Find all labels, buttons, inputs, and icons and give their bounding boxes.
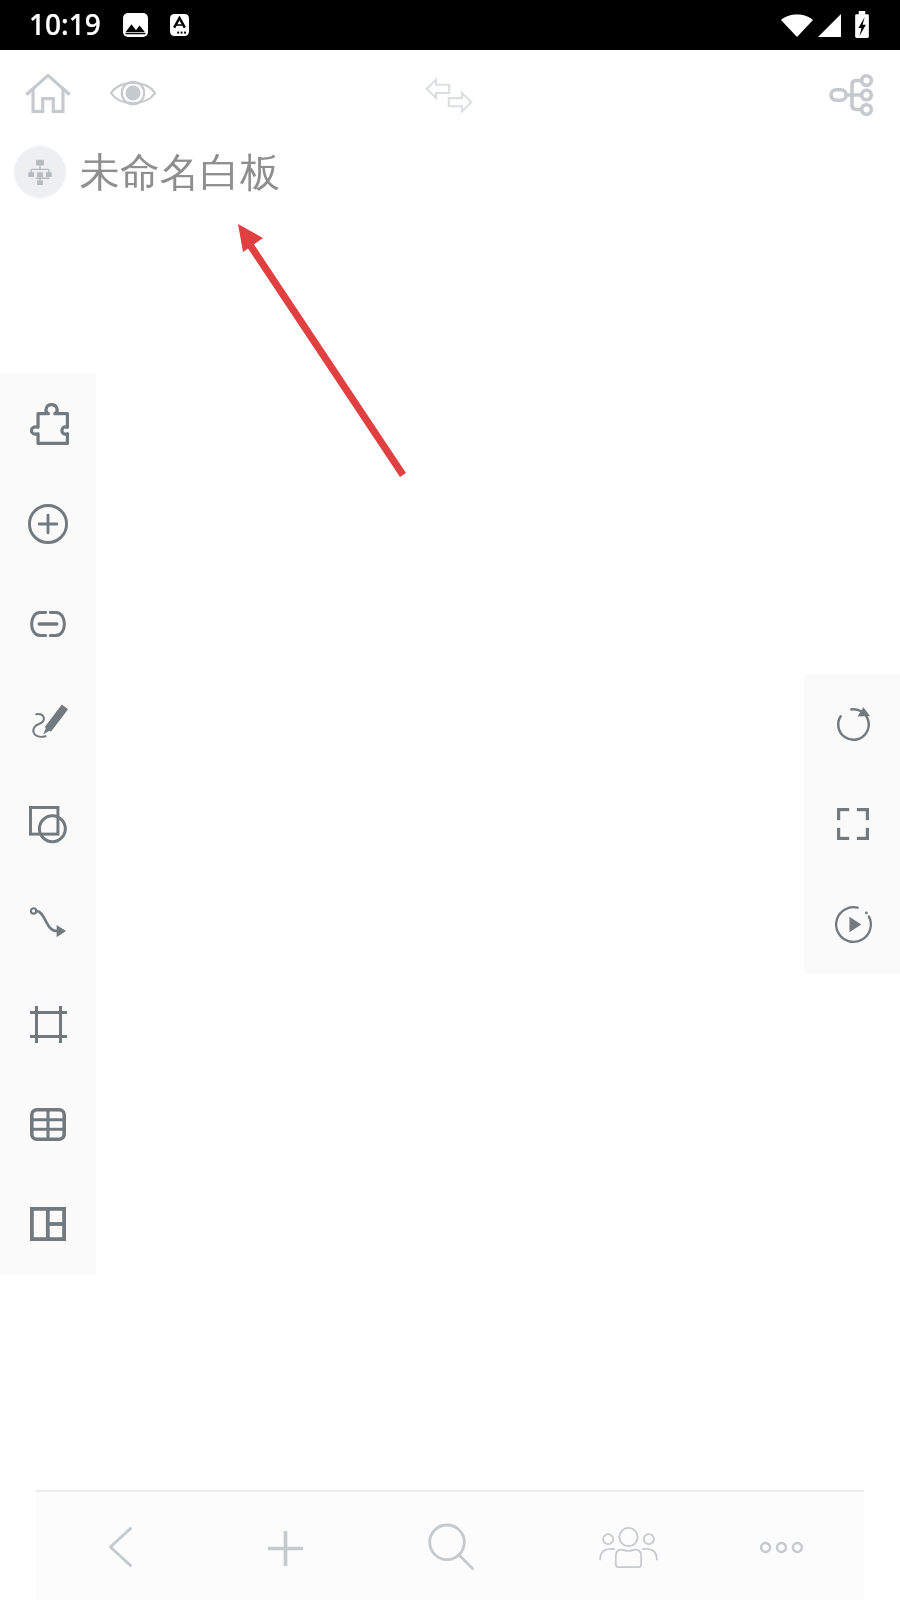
button[interactable]: Home bbox=[13, 58, 83, 128]
button[interactable]: Undo and redo bbox=[414, 60, 484, 130]
button[interactable]: Share bbox=[817, 60, 887, 130]
staticText: 未命名白板 bbox=[80, 147, 280, 197]
button[interactable]: Pen bbox=[0, 674, 96, 774]
button[interactable]: Plugins bbox=[0, 374, 96, 474]
button[interactable]: Frame bbox=[0, 974, 96, 1074]
button[interactable]: Connector bbox=[0, 874, 96, 974]
button[interactable]: More options bbox=[704, 1492, 864, 1600]
button[interactable]: Members bbox=[534, 1492, 704, 1600]
button[interactable]: Add bbox=[200, 1492, 367, 1600]
staticText: 10:19 bbox=[29, 5, 101, 43]
button[interactable]: Layout bbox=[0, 1174, 96, 1274]
button[interactable]: Reset view bbox=[804, 674, 900, 774]
button[interactable]: Back bbox=[36, 1492, 200, 1600]
button[interactable]: Search bbox=[367, 1492, 534, 1600]
button[interactable]: Insert bbox=[0, 474, 96, 574]
button[interactable]: Present bbox=[804, 874, 900, 974]
button[interactable]: Fit to screen bbox=[804, 774, 900, 874]
button[interactable]: Shapes bbox=[0, 774, 96, 874]
button[interactable]: Link bbox=[0, 574, 96, 674]
button[interactable]: Preview mode bbox=[98, 58, 168, 128]
button[interactable]: Table bbox=[0, 1074, 96, 1174]
button[interactable]: 未命名白板 bbox=[14, 137, 280, 207]
